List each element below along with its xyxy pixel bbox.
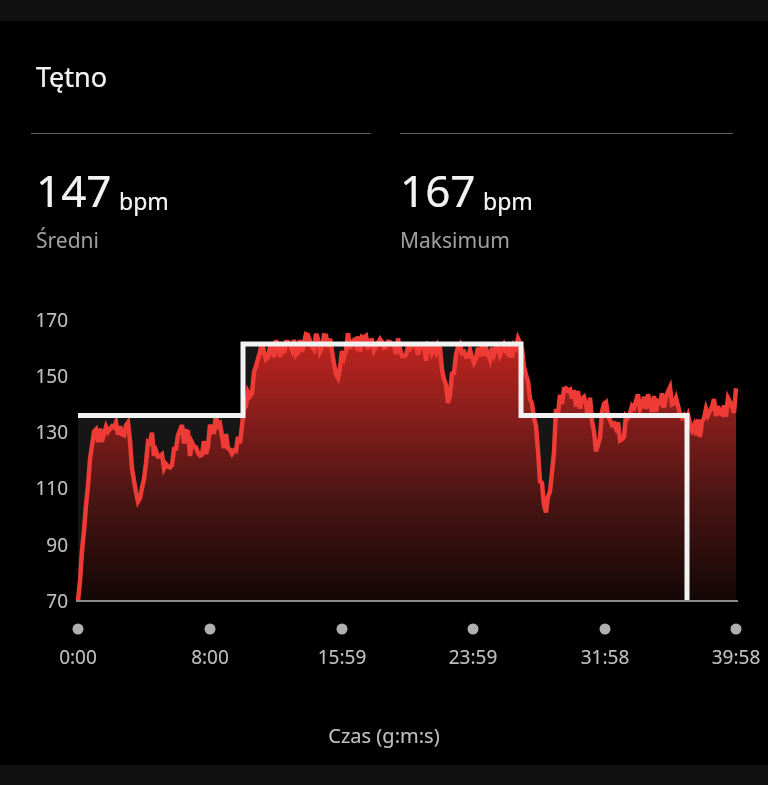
button[interactable]: 147 (36, 160, 169, 255)
staticText: 15:59 (297, 644, 387, 670)
button[interactable]: 167 (400, 160, 533, 255)
staticText: Średni (36, 226, 99, 255)
staticText: 150 (14, 363, 68, 389)
staticText: 8:00 (165, 644, 255, 670)
staticText: 23:59 (428, 644, 518, 670)
button[interactable]: Tętno (36, 58, 108, 95)
staticText: 167 (400, 160, 476, 220)
staticText: 147 (36, 160, 112, 220)
staticText: 31:58 (560, 644, 650, 670)
staticText: 110 (14, 475, 68, 501)
staticText: bpm (483, 185, 533, 216)
staticText: Tętno (36, 58, 108, 95)
staticText: Czas (g:m:s) (0, 722, 768, 749)
staticText: 90 (14, 532, 68, 558)
staticText: 70 (14, 588, 68, 614)
staticText: 130 (14, 419, 68, 445)
staticText: Maksimum (400, 226, 510, 255)
staticText: 0:00 (33, 644, 123, 670)
staticText: 39:58 (691, 644, 768, 670)
staticText: bpm (119, 185, 169, 216)
staticText: 170 (14, 307, 68, 333)
